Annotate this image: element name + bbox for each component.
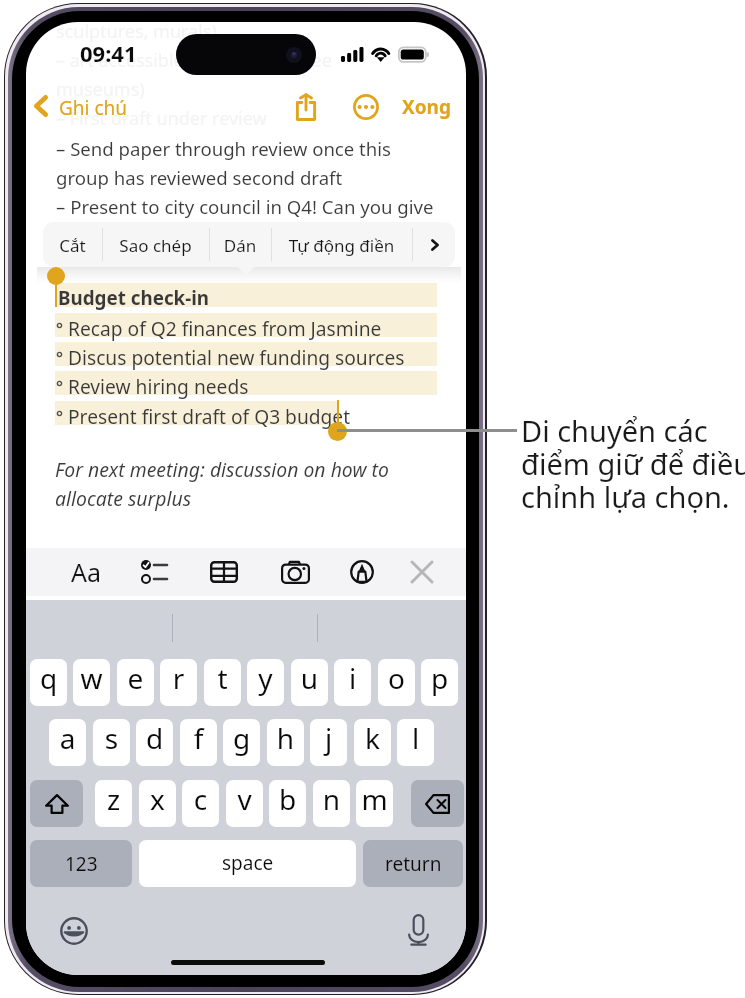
button[interactable]: s [93,719,130,766]
button[interactable]: More options [343,84,389,130]
staticText: Xong [402,94,451,120]
button[interactable]: n [313,780,350,827]
button[interactable]: Close keyboard [399,548,445,596]
staticText: museums) [56,77,145,102]
staticText: s [93,719,130,757]
staticText: v [226,780,263,818]
button[interactable]: x [139,780,176,827]
staticText: – art accessible to everyone (free [56,48,332,73]
button[interactable]: d [136,719,173,766]
button[interactable]: o [378,659,415,706]
button[interactable]: c [182,780,219,827]
button[interactable]: Backspace [411,780,464,827]
staticText: h [267,719,304,757]
staticText: Present first draft of Q3 budget [68,403,351,429]
staticText: – Present to city council in Q4! Can you… [56,194,434,219]
staticText: q [30,659,67,697]
button[interactable]: More actions [412,222,454,267]
button[interactable]: u [291,659,328,706]
button[interactable]: r [160,659,197,706]
staticText: Budget check-in [58,285,210,311]
staticText: m [356,780,393,818]
staticText: c [182,780,219,818]
button[interactable]: h [267,719,304,766]
button[interactable]: Ghi chú [30,90,130,124]
staticText: space [222,850,274,876]
button[interactable]: Xong [398,90,452,124]
staticText: t [204,659,241,697]
button[interactable]: g [223,719,260,766]
button[interactable]: w [73,659,110,706]
button[interactable]: return [363,840,463,887]
button[interactable]: i [334,659,371,706]
staticText: e [117,659,154,697]
staticText: u [291,659,328,697]
staticText: Tự động điền [271,234,412,267]
staticText: Review hiring needs [68,373,249,399]
button[interactable]: k [354,719,391,766]
button[interactable]: z [95,780,132,827]
staticText: sculptures, murals) [56,22,217,44]
button[interactable]: q [30,659,67,706]
staticText: group has reviewed second draft [56,165,343,190]
button[interactable]: t [204,659,241,706]
staticText: y [247,659,284,697]
staticText: o [378,659,415,697]
button[interactable]: Dán [209,222,271,267]
button[interactable]: Text format [63,548,109,596]
button[interactable]: f [180,719,217,766]
button[interactable]: l [397,719,434,766]
button[interactable]: e [117,659,154,706]
staticText: x [139,780,176,818]
button[interactable]: Camera [272,548,318,596]
staticText: Ghi chú [59,95,128,121]
button[interactable]: v [226,780,263,827]
button[interactable]: j [310,719,347,766]
staticText: d [136,719,173,757]
staticText: Discus potential new funding sources [68,344,405,370]
staticText: b [269,780,306,818]
staticText: Recap of Q2 finances from Jasmine [68,315,382,341]
staticText: g [223,719,260,757]
button[interactable]: Table [201,548,247,596]
button[interactable]: Share [283,84,329,130]
staticText: Di chuyển các điểm giữ để điều chỉnh lựa… [521,411,745,516]
button[interactable]: y [247,659,284,706]
button[interactable]: Dictation [398,910,438,950]
button[interactable]: Tự động điền [271,222,412,267]
staticText: w [73,659,110,697]
staticText: Dán [209,234,271,267]
staticText: – Send paper through review once this [56,136,392,161]
button[interactable]: Emoji [54,911,94,951]
staticText: i [334,659,371,697]
button[interactable]: Cắt [43,222,102,267]
staticText: – First draft under review [56,106,267,131]
button[interactable]: m [356,780,393,827]
staticText: allocate surplus [55,485,192,511]
staticText: a [49,719,86,757]
staticText: For next meeting: discussion on how to [55,456,389,482]
button[interactable]: a [49,719,86,766]
staticText: j [310,719,347,757]
staticText: k [354,719,391,757]
staticText: n [313,780,350,818]
staticText: 09:41 [80,38,137,68]
staticText: return [385,851,442,877]
staticText: 123 [65,851,98,877]
button[interactable]: Checklist [131,548,177,596]
button[interactable]: 123 [30,840,132,887]
button[interactable]: Shift [30,780,83,827]
button[interactable]: space [139,840,356,887]
staticText: l [397,719,434,757]
staticText: Cắt [43,234,102,267]
staticText: Aa [71,555,102,589]
staticText: r [160,659,197,697]
staticText: z [95,780,132,818]
button[interactable]: p [421,659,458,706]
button[interactable]: Sao chép [102,222,209,267]
button[interactable]: Markup [339,548,385,596]
staticText: p [421,659,458,697]
staticText: f [180,719,217,757]
staticText: Sao chép [102,234,209,267]
button[interactable]: b [269,780,306,827]
